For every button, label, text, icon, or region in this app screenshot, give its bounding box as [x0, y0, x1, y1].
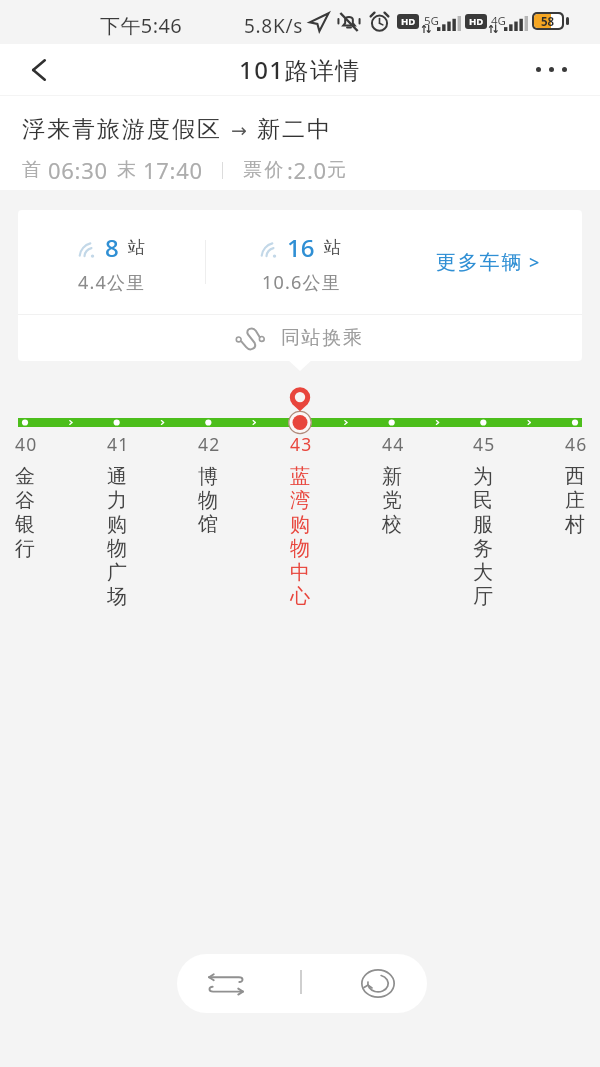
staticText: 同站换乘 [281, 326, 364, 350]
staticText: 更多车辆 [436, 250, 524, 275]
staticText: 8 [105, 231, 119, 264]
staticText: 58 [541, 14, 555, 28]
button[interactable]: 42 博物馆 [166, 432, 250, 632]
staticText: 45 [473, 432, 496, 456]
staticText: 5G [424, 13, 439, 29]
button[interactable]: 同站换乘 [18, 315, 582, 361]
staticText: 下午5:46 [100, 12, 183, 39]
button[interactable]: Back [14, 44, 64, 96]
staticText: 41 [107, 432, 130, 456]
staticText: 博 物 馆 [198, 464, 218, 537]
staticText: 40 [15, 432, 38, 456]
button[interactable]: 44 新党校 [350, 432, 434, 632]
staticText: 17:40 [143, 155, 203, 185]
button[interactable]: 16 站 10.6公里 [208, 211, 395, 315]
staticText: 浮来青旅游度假区 [21, 115, 221, 144]
staticText: 元 [327, 158, 346, 182]
button[interactable]: 43 蓝湾购物中心 [258, 432, 342, 632]
staticText: 新 党 校 [382, 464, 402, 537]
button[interactable]: 更多车辆 [393, 210, 582, 314]
staticText: 票价 [243, 158, 287, 182]
staticText: :2.0 [287, 155, 327, 185]
staticText: HD [469, 15, 484, 28]
button[interactable]: Reverse direction [177, 954, 300, 1013]
staticText: 43 [290, 432, 313, 456]
staticText: 46 [565, 432, 588, 456]
staticText: 通 力 购 物 广 场 [107, 464, 127, 609]
button[interactable]: 40 金谷银行 [0, 432, 67, 632]
button[interactable]: 41 通力购物广场 [75, 432, 159, 632]
staticText: 蓝 湾 购 物 中 心 [290, 464, 310, 609]
button[interactable]: 8 站 4.4公里 [18, 211, 205, 315]
button[interactable]: 46 西庄村 [533, 432, 600, 632]
staticText: 42 [198, 432, 221, 456]
staticText: 4.4公里 [78, 270, 146, 295]
staticText: 44 [382, 432, 405, 456]
staticText: 16 [287, 231, 315, 264]
button[interactable]: Refresh [302, 954, 427, 1013]
staticText: 西 庄 村 [565, 464, 585, 537]
staticText: HD [401, 15, 416, 28]
button[interactable]: 45 为民服务大厅 [441, 432, 525, 632]
staticText: 4G [491, 13, 506, 29]
staticText: 06:30 [48, 155, 108, 185]
staticText: 5.8K/s [244, 13, 303, 39]
staticText: 10.6公里 [262, 270, 341, 295]
staticText: 首 [22, 158, 41, 182]
button[interactable]: More options [524, 44, 578, 96]
staticText: 金 谷 银 行 [15, 464, 35, 561]
staticText: 为 民 服 务 大 厅 [473, 464, 493, 609]
staticText: 末 [117, 158, 136, 182]
staticText: 站 [128, 237, 145, 258]
staticText: → [231, 119, 247, 141]
staticText: 101路详情 [239, 53, 361, 86]
staticText: 新二中 [256, 115, 331, 144]
staticText: 站 [324, 237, 341, 258]
staticText: > [529, 250, 540, 275]
